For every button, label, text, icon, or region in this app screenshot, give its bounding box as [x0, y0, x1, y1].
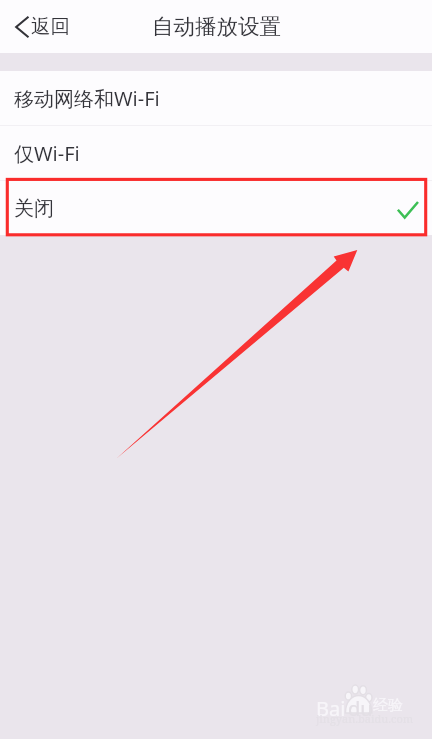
- other: Selected: [397, 195, 418, 221]
- staticText: 仅Wi-Fi: [14, 140, 80, 167]
- staticText: 返回: [31, 14, 70, 39]
- button[interactable]: Back: [0, 0, 80, 53]
- staticText: du: [348, 695, 373, 722]
- staticText: 经验: [373, 696, 403, 715]
- other: Back: [15, 16, 29, 38]
- staticText: 移动网络和Wi-Fi: [14, 85, 160, 112]
- button[interactable]: 移动网络和Wi-Fi: [0, 71, 432, 125]
- staticText: 关闭: [14, 196, 54, 221]
- button[interactable]: 仅Wi-Fi: [0, 126, 432, 180]
- button[interactable]: 关闭: [0, 181, 432, 235]
- staticText: jingyan.baidu.com: [316, 711, 414, 726]
- staticText: 自动播放设置: [152, 13, 281, 40]
- staticText: Bai: [316, 695, 346, 722]
